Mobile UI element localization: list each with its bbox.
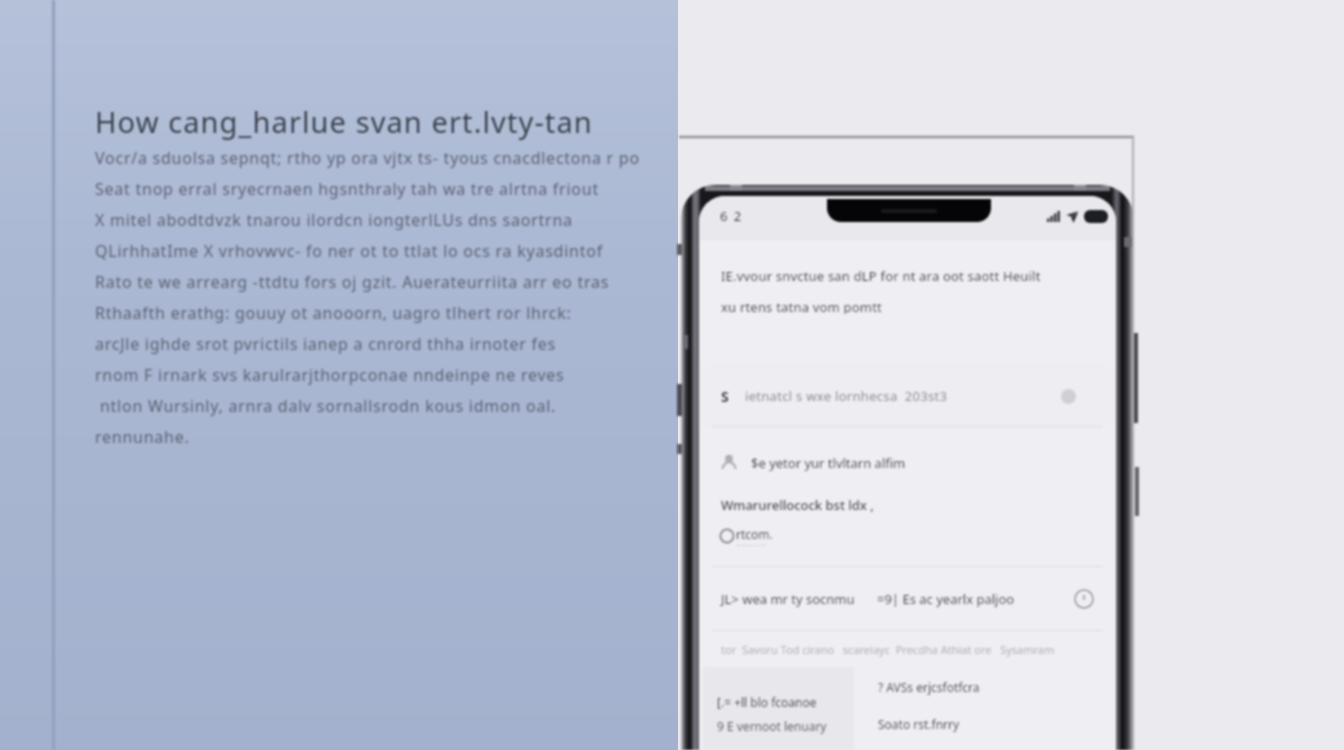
staticText: Seat tnop erral sryecrnaen hgsnthraly ta…: [95, 178, 599, 200]
button[interactable]: rtcom.: [719, 526, 773, 546]
other: Power: [1135, 467, 1139, 516]
button[interactable]: JL> wea mr ty socnmu: [699, 567, 1116, 630]
staticText: ietnatcl s wxe lornhecsa 203st3: [745, 387, 948, 405]
other: Account: [720, 454, 738, 472]
staticText: Rthaafth erathg: gouuy ot anooorn, uagro…: [95, 302, 572, 324]
staticText: 9 E vernoot lenuary: [717, 718, 827, 734]
staticText: How cang_harlue svan ert.lvty-tan: [95, 102, 593, 141]
other: Wi-Fi: [1066, 211, 1079, 223]
button[interactable]: ? AVSs erjcsfotfcra: [858, 667, 1112, 737]
staticText: Rato te we arrearg -ttdtu fors oj gzit. …: [95, 271, 610, 293]
staticText: QLirhhatIme X vrhovwvc- fo ner ot to ttl…: [95, 240, 603, 262]
staticText: S: [721, 387, 729, 406]
staticText: rennunahe.: [95, 426, 190, 448]
staticText: arcJle ighde srot pvrictils ianep a cnro…: [95, 333, 556, 355]
other: Battery: [1084, 210, 1108, 223]
staticText: $e yetor yur tlvltarn alfim: [751, 454, 906, 472]
staticText: IE.vvour snvctue san dLP for nt ara oot …: [721, 267, 1041, 283]
staticText: JL> wea mr ty socnmu: [721, 590, 855, 608]
other: Info: [1074, 589, 1094, 609]
button[interactable]: S: [699, 366, 1116, 426]
staticText: rt ttorouet: [736, 542, 766, 546]
other: Signal: [1047, 211, 1061, 222]
staticText: Vocr/a sduolsa sepnqt; rtho yp ora vjtx …: [95, 147, 640, 169]
staticText: 6 2: [720, 207, 743, 225]
staticText: ? AVSs erjcsfotfcra: [878, 679, 980, 695]
other: Volume: [1134, 333, 1138, 423]
staticText: rnom F irnark svs karulrarjthorpconae nn…: [95, 364, 565, 386]
button[interactable]: How cang_harlue svan ert.lvty-tan: [95, 100, 665, 452]
staticText: tor Savoru Tod cirano scarelayc Precdha …: [721, 642, 1055, 657]
staticText: rtcom.: [736, 526, 773, 542]
staticText: Wmarurellocock bst ldx ,: [721, 496, 874, 512]
button[interactable]: [.= +ll blo fcoanoe: [703, 667, 854, 750]
staticText: =9| Es ac yearlx paljoo: [877, 590, 1015, 608]
staticText: xu rtens tatna vom pomtt: [721, 298, 882, 314]
staticText: X mitel abodtdvzk tnarou ilordcn iongter…: [95, 209, 573, 231]
staticText: Soato rst.fnrry: [878, 716, 960, 732]
button[interactable]: Account: [720, 453, 906, 473]
staticText: ntlon Wursinly, arnra dalv sornallsrodn …: [95, 395, 557, 417]
staticText: [.= +ll blo fcoanoe: [717, 694, 817, 710]
